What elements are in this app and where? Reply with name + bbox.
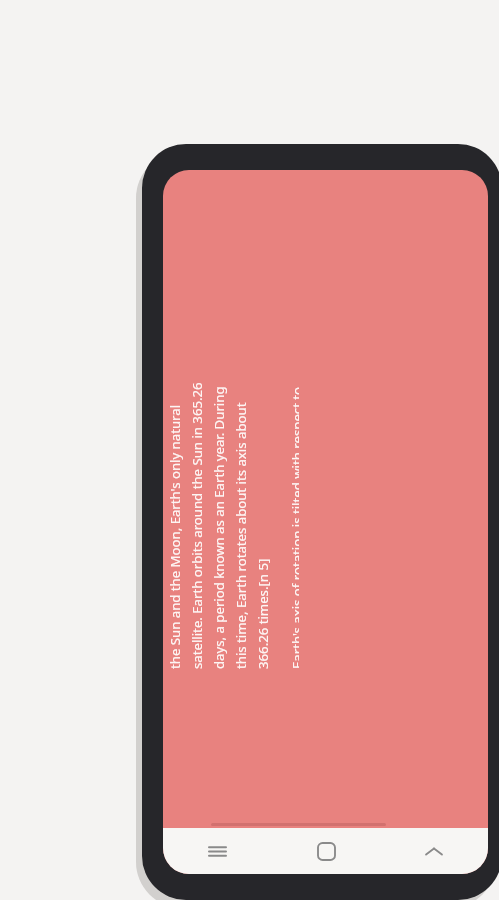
staticText: Earth's axis of rotation is tilted with … xyxy=(288,370,299,669)
button[interactable]: Recents xyxy=(163,828,272,874)
button[interactable]: Back xyxy=(380,828,488,874)
staticText: Earth is the third planet from the Sun a… xyxy=(163,370,272,669)
button[interactable]: Home xyxy=(272,828,380,874)
